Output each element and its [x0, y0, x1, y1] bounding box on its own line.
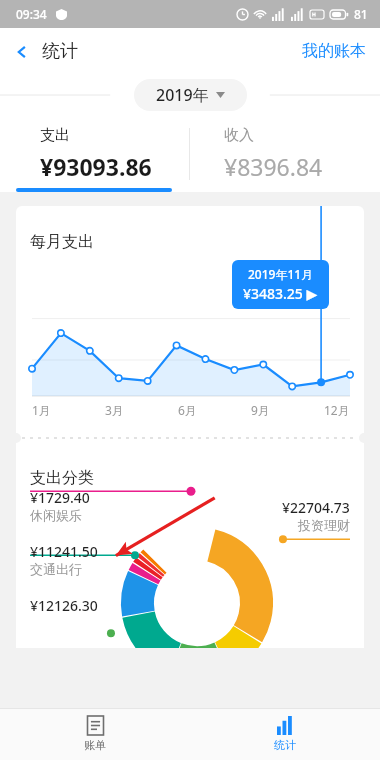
staticText: 3月 [105, 402, 124, 418]
button[interactable]: Back [0, 34, 90, 69]
button[interactable]: 收入 [190, 116, 380, 192]
staticText: 投资理财 [298, 517, 350, 533]
staticText: ¥3483.25 ▶ [243, 284, 318, 303]
staticText: 12月 [324, 402, 350, 418]
button[interactable]: 账单 [0, 709, 190, 760]
staticText: 1月 [32, 402, 51, 418]
staticText: 2019年11月 [248, 266, 314, 282]
staticText: 统计 [42, 40, 78, 63]
button[interactable]: 统计 [190, 709, 380, 760]
staticText: 81 [354, 6, 368, 22]
other: Back [14, 44, 30, 60]
staticText: ¥1729.40 [30, 488, 90, 507]
button[interactable]: 2019年 [134, 79, 247, 111]
staticText: 支出 [40, 126, 70, 145]
button[interactable]: 2019年11月 [232, 260, 329, 309]
button[interactable]: 支出 [0, 116, 189, 192]
staticText: ¥22704.73 [282, 498, 350, 517]
staticText: 统计 [274, 738, 296, 752]
staticText: 2019年 [156, 84, 209, 106]
staticText: 09:34 [16, 6, 47, 22]
staticText: 收入 [224, 126, 254, 145]
staticText: ¥8396.84 [224, 151, 323, 182]
staticText: 6月 [178, 402, 197, 418]
staticText: 交通出行 [30, 561, 82, 577]
staticText: ¥12126.30 [30, 596, 98, 615]
staticText: 每月支出 [30, 232, 94, 252]
staticText: 支出分类 [30, 468, 94, 488]
staticText: 9月 [251, 402, 270, 418]
staticText: 休闲娱乐 [30, 507, 82, 523]
button[interactable]: 我的账本 [288, 33, 380, 69]
staticText: 账单 [84, 738, 106, 752]
staticText: ¥11241.50 [30, 542, 98, 561]
staticText: ¥93093.86 [40, 151, 152, 182]
